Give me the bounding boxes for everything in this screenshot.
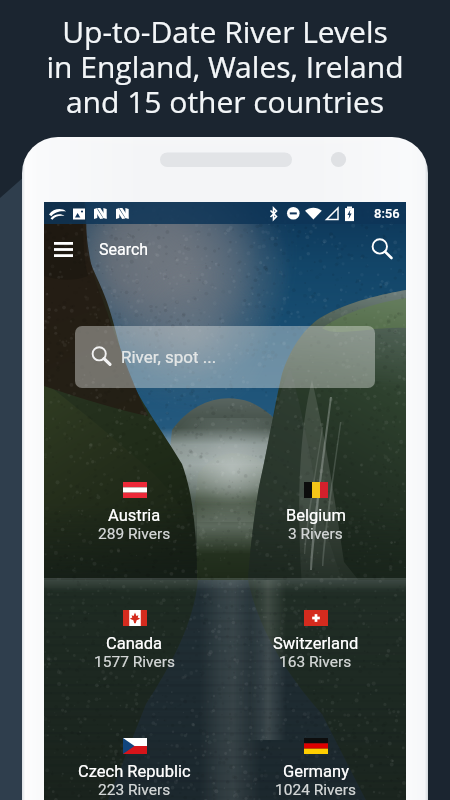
staticText: River, spot ... bbox=[121, 347, 217, 367]
staticText: Search bbox=[99, 240, 149, 259]
staticText: Austria bbox=[108, 506, 161, 525]
staticText: Canada bbox=[106, 634, 163, 653]
staticText: 1024 Rivers bbox=[275, 781, 356, 799]
staticText: 223 Rivers bbox=[98, 781, 171, 799]
staticText: Switzerland bbox=[273, 634, 359, 653]
staticText: 8:56 bbox=[374, 206, 400, 221]
staticText: Up-to-Date River Levels in England, Wale… bbox=[46, 11, 404, 122]
button[interactable]: Search bbox=[358, 225, 406, 273]
staticText: 1577 Rivers bbox=[94, 653, 175, 671]
button[interactable]: Open navigation menu bbox=[44, 225, 82, 273]
staticText: 289 Rivers bbox=[98, 525, 171, 543]
staticText: 3 Rivers bbox=[288, 525, 343, 543]
staticText: 163 Rivers bbox=[279, 653, 352, 671]
button[interactable]: Germany bbox=[225, 738, 406, 799]
staticText: Germany bbox=[283, 762, 349, 781]
staticText: Belgium bbox=[286, 506, 346, 525]
button[interactable]: River, spot ... bbox=[75, 326, 375, 388]
staticText: Czech Republic bbox=[78, 762, 191, 781]
button[interactable]: Switzerland bbox=[225, 610, 406, 671]
button[interactable]: Canada bbox=[44, 610, 225, 671]
button[interactable]: Czech Republic bbox=[44, 738, 225, 799]
button[interactable]: Austria bbox=[44, 482, 225, 543]
button[interactable]: Belgium bbox=[225, 482, 406, 543]
